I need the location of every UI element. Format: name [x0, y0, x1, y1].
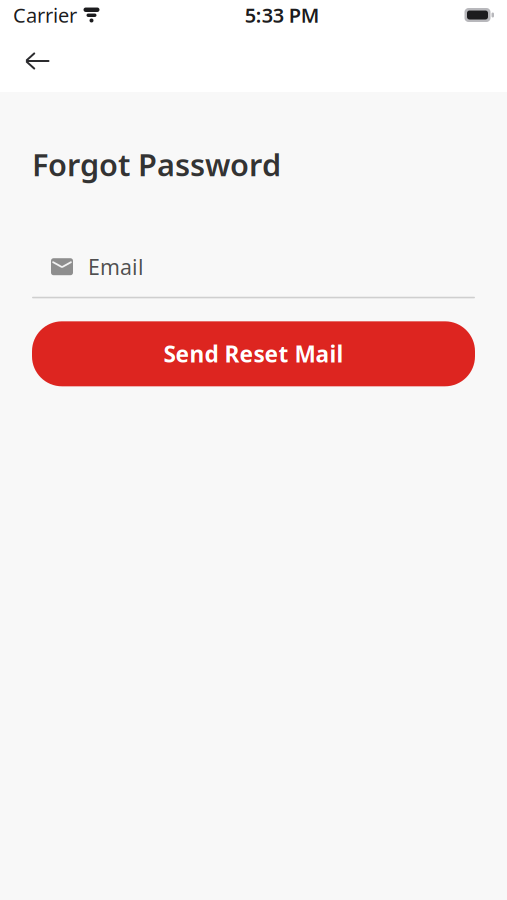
- button[interactable]: Back: [16, 39, 60, 83]
- staticText: Send Reset Mail: [163, 339, 343, 369]
- button[interactable]: Send Reset Mail: [32, 321, 475, 386]
- staticText: Carrier: [13, 2, 77, 28]
- staticText: Email: [88, 253, 144, 281]
- staticText: Forgot Password: [32, 144, 281, 185]
- staticText: 5:33 PM: [245, 2, 320, 28]
